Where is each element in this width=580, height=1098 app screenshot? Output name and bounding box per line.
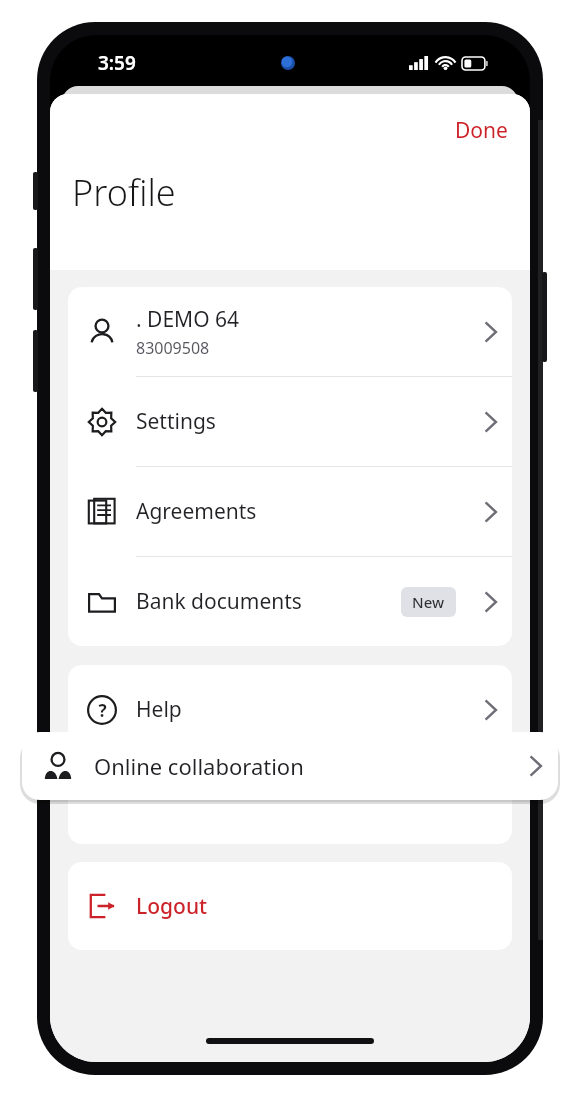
- staticText: Profile: [72, 168, 176, 217]
- button[interactable]: ?: [68, 665, 512, 754]
- staticText: Online collaboration: [94, 751, 512, 781]
- button[interactable]: Done: [443, 108, 520, 153]
- staticText: Help: [136, 695, 182, 724]
- staticText: ?: [98, 699, 107, 722]
- staticText: 3:59: [98, 50, 136, 76]
- staticText: . DEMO 64: [136, 305, 240, 334]
- button[interactable]: Agreements: [68, 467, 512, 556]
- staticText: New: [412, 592, 445, 612]
- button[interactable]: Online collaboration: [22, 732, 558, 800]
- staticText: Done: [455, 116, 508, 145]
- button[interactable]: Settings: [68, 377, 512, 466]
- staticText: Bank documents: [136, 587, 302, 616]
- button[interactable]: . DEMO 64: [68, 287, 512, 376]
- staticText: Agreements: [136, 497, 257, 526]
- staticText: 83009508: [136, 337, 210, 359]
- button[interactable]: Bank documents: [68, 557, 512, 646]
- button[interactable]: Logout: [68, 862, 512, 950]
- staticText: Logout: [136, 892, 208, 921]
- staticText: Settings: [136, 407, 216, 436]
